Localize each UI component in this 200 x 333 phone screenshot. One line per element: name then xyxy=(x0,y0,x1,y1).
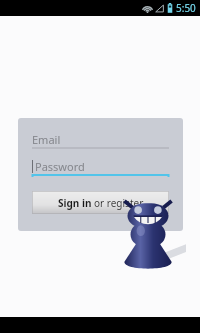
staticText: Sign in or register xyxy=(58,196,144,210)
staticText: 5:50 xyxy=(176,1,196,15)
other: Android mascot xyxy=(110,201,186,277)
staticText: Password xyxy=(35,159,85,174)
button[interactable]: Password xyxy=(32,158,169,177)
staticText: Email xyxy=(32,132,61,147)
button[interactable]: Sign in or register xyxy=(32,191,169,214)
button[interactable]: Email xyxy=(32,131,169,150)
